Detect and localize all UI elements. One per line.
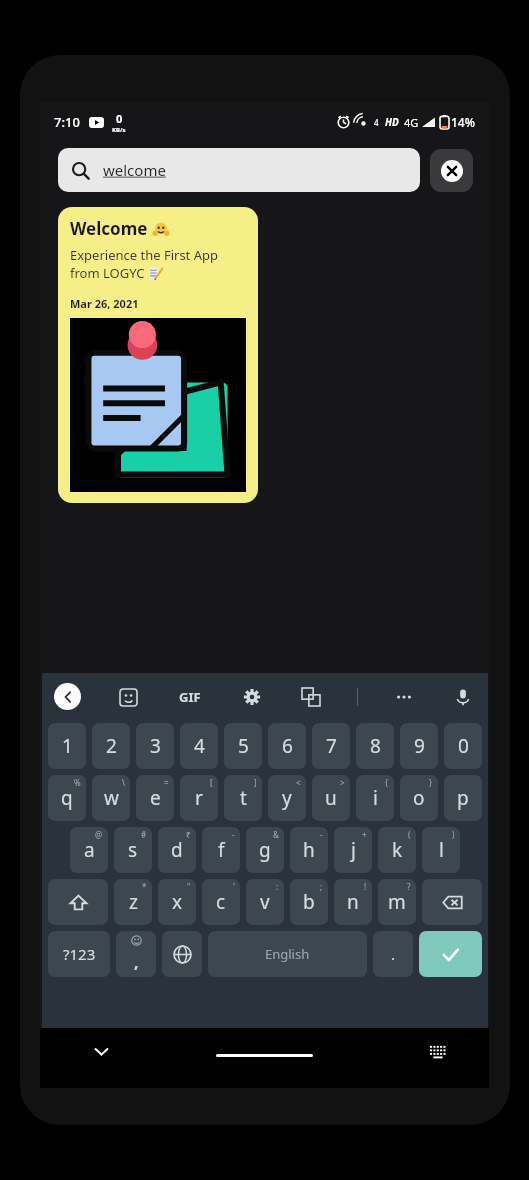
staticText: t [240, 785, 247, 811]
staticText: 0 [458, 733, 469, 759]
staticText: ₹ [186, 829, 191, 840]
button[interactable]: Translate [298, 684, 324, 710]
staticText: [ [210, 777, 213, 788]
button[interactable]: 7 [312, 723, 350, 769]
button[interactable]: z [114, 879, 152, 925]
button[interactable]: r [180, 775, 218, 821]
staticText: 4 [194, 733, 205, 759]
staticText: ( [408, 829, 411, 840]
button[interactable]: p [444, 775, 482, 821]
button[interactable]: s [114, 827, 152, 873]
button[interactable]: Change language [162, 931, 202, 977]
button[interactable]: Comma [116, 931, 156, 977]
button[interactable]: Backspace [422, 879, 482, 925]
staticText: " [187, 881, 191, 892]
staticText: r [195, 785, 203, 811]
button[interactable]: 9 [400, 723, 438, 769]
staticText: i [373, 785, 378, 811]
button[interactable]: t [224, 775, 262, 821]
staticText: < [296, 777, 301, 788]
staticText: GIF [179, 688, 201, 706]
button[interactable]: Shift [48, 879, 108, 925]
staticText: q [61, 785, 73, 811]
button[interactable]: 6 [268, 723, 306, 769]
staticText: # [141, 829, 147, 840]
staticText: n [347, 889, 359, 915]
button[interactable]: Welcome [58, 207, 258, 503]
staticText: ; [320, 881, 323, 892]
staticText: ] [254, 777, 257, 788]
staticText: d [171, 837, 183, 863]
button[interactable]: Clear search [430, 149, 473, 192]
button[interactable]: w [92, 775, 130, 821]
staticText: e [150, 785, 161, 811]
staticText: 5 [238, 733, 249, 759]
button[interactable]: y [268, 775, 306, 821]
staticText: 0 [116, 111, 123, 126]
staticText: English [265, 945, 310, 963]
button[interactable]: welcome [58, 148, 420, 192]
staticText: 3 [150, 733, 161, 759]
staticText: : [276, 881, 279, 892]
staticText: Experience the First App [70, 246, 218, 264]
staticText: ?123 [63, 944, 96, 964]
staticText: x [172, 889, 183, 915]
button[interactable]: i [356, 775, 394, 821]
button[interactable]: Stickers [115, 684, 141, 710]
button[interactable]: 0 [444, 723, 482, 769]
button[interactable]: o [400, 775, 438, 821]
button[interactable]: Voice input [450, 684, 476, 710]
staticText: Welcome [70, 217, 148, 240]
button[interactable]: 4 [180, 723, 218, 769]
button[interactable]: n [334, 879, 372, 925]
button[interactable]: 1 [48, 723, 86, 769]
button[interactable]: c [202, 879, 240, 925]
staticText: % [74, 777, 81, 788]
button[interactable]: x [158, 879, 196, 925]
button[interactable]: f [202, 827, 240, 873]
staticText: Mar 26, 2021 [70, 296, 139, 311]
button[interactable]: j [334, 827, 372, 873]
button[interactable]: d [158, 827, 196, 873]
button[interactable]: Enter [419, 931, 482, 977]
staticText: ) [452, 829, 455, 840]
button[interactable]: . [373, 931, 413, 977]
button[interactable]: a [70, 827, 108, 873]
button[interactable]: English [208, 931, 367, 977]
button[interactable]: 8 [356, 723, 394, 769]
staticText: 6 [282, 733, 293, 759]
button[interactable]: g [246, 827, 284, 873]
staticText: g [259, 837, 271, 863]
staticText: from LOGYC [70, 264, 148, 282]
staticText: + [362, 829, 367, 840]
button[interactable]: 2 [92, 723, 130, 769]
staticText: ? [407, 881, 411, 892]
staticText: o [413, 785, 425, 811]
staticText: m [388, 889, 406, 915]
button[interactable]: More options [391, 684, 417, 710]
button[interactable]: Settings [239, 684, 265, 710]
button[interactable]: ?123 [48, 931, 110, 977]
button[interactable]: 3 [136, 723, 174, 769]
button[interactable]: q [48, 775, 86, 821]
staticText: 1 [62, 733, 73, 759]
button[interactable]: Switch keyboard [425, 1038, 451, 1064]
button[interactable]: m [378, 879, 416, 925]
button[interactable]: k [378, 827, 416, 873]
button[interactable]: Back [54, 683, 81, 710]
button[interactable]: h [290, 827, 328, 873]
staticText: = [164, 777, 169, 788]
button[interactable]: l [422, 827, 460, 873]
staticText: 8 [370, 733, 381, 759]
button[interactable]: Hide keyboard [88, 1038, 114, 1064]
staticText: , [134, 951, 139, 973]
button[interactable]: v [246, 879, 284, 925]
button[interactable]: 5 [224, 723, 262, 769]
staticText: 4 [374, 117, 379, 128]
button[interactable]: b [290, 879, 328, 925]
button[interactable]: u [312, 775, 350, 821]
button[interactable]: GIF [175, 684, 205, 710]
staticText: k [392, 837, 403, 863]
staticText: ! [364, 881, 367, 892]
button[interactable]: e [136, 775, 174, 821]
